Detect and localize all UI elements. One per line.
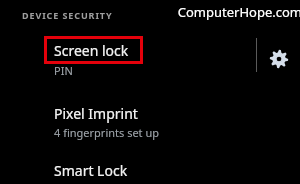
button[interactable]: Smart Lock — [0, 157, 250, 184]
button[interactable]: Pixel Imprint — [0, 100, 250, 145]
button[interactable]: Screen lock settings — [266, 46, 292, 72]
staticText: DEVICE SECURITY — [22, 9, 113, 21]
staticText: Pixel Imprint — [54, 104, 138, 123]
button[interactable]: Screen lock — [0, 34, 250, 84]
staticText: Smart Lock — [54, 161, 128, 180]
staticText: ComputerHope.com — [177, 3, 300, 21]
staticText: Screen lock — [54, 41, 129, 60]
staticText: 4 fingerprints set up — [54, 125, 159, 140]
staticText: PIN — [54, 63, 73, 78]
